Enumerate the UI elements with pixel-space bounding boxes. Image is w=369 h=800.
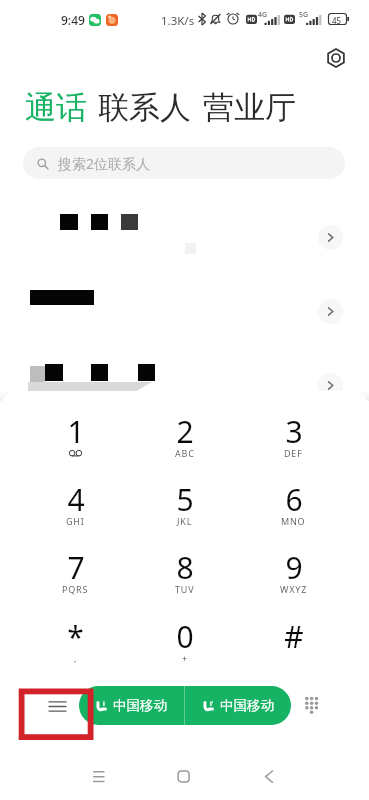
button[interactable]: 7 (21, 542, 130, 604)
staticText: 中国移动 (220, 697, 274, 714)
button[interactable]: Back (247, 748, 291, 780)
staticText: * (67, 616, 84, 657)
staticText: 3 (285, 411, 303, 452)
staticText: 搜索2位联系人 (58, 154, 151, 173)
button[interactable]: Settings (320, 42, 352, 74)
button[interactable]: Open details (318, 373, 343, 398)
staticText: PQRS (62, 583, 89, 595)
staticText: 中国移动 (113, 697, 167, 714)
button[interactable]: Call log menu (33, 684, 81, 728)
staticText: 6 (285, 479, 303, 520)
staticText: 联系人 (98, 88, 191, 127)
staticText: DEF (284, 447, 303, 459)
staticText: JKL (177, 515, 193, 527)
button[interactable]: 3 (239, 406, 348, 468)
staticText: 2 (176, 411, 194, 452)
button[interactable]: Keypad (295, 683, 333, 727)
button[interactable]: Open details (318, 299, 343, 324)
staticText: , (74, 652, 78, 664)
staticText: 4G (258, 10, 268, 20)
staticText: 9:49 (61, 12, 85, 28)
button[interactable]: 联系人 (98, 88, 191, 127)
staticText: 1 (67, 411, 85, 452)
button[interactable]: 5 (130, 474, 239, 536)
staticText: 4 (67, 479, 85, 520)
staticText: 5G (299, 10, 309, 20)
button[interactable]: 9 (239, 542, 348, 604)
button[interactable]: 中国移动 (185, 686, 291, 725)
staticText: TUV (175, 583, 195, 595)
button[interactable]: 搜索2位联系人 (23, 147, 345, 179)
staticText: GHI (66, 515, 85, 527)
staticText: 7 (67, 547, 85, 588)
button[interactable]: * (21, 611, 130, 673)
button[interactable]: # (239, 611, 348, 673)
staticText: 5 (176, 479, 194, 520)
button[interactable]: 6 (239, 474, 348, 536)
staticText: 8 (176, 547, 194, 588)
staticText: ABC (175, 447, 195, 459)
staticText: WXYZ (280, 583, 308, 595)
button[interactable]: Recent apps (77, 748, 121, 780)
staticText: # (284, 616, 304, 657)
button[interactable]: Open details (318, 225, 343, 250)
button[interactable]: 营业厅 (203, 88, 296, 127)
button[interactable]: 通话 (25, 88, 87, 127)
button[interactable]: 1 (21, 406, 130, 468)
staticText: 0 (176, 616, 194, 657)
button[interactable]: 4 (21, 474, 130, 536)
staticText: 45 (332, 15, 342, 26)
staticText: 1.3K/s (161, 13, 195, 29)
button[interactable]: 8 (130, 542, 239, 604)
button[interactable]: Home (161, 748, 205, 780)
staticText: + (182, 652, 188, 664)
button[interactable]: 中国移动 (79, 686, 184, 725)
staticText: 9 (285, 547, 303, 588)
button[interactable]: 2 (130, 406, 239, 468)
staticText: 营业厅 (203, 88, 296, 127)
staticText: 通话 (25, 88, 87, 127)
staticText: MNO (281, 515, 306, 527)
button[interactable]: 0 (130, 611, 239, 673)
